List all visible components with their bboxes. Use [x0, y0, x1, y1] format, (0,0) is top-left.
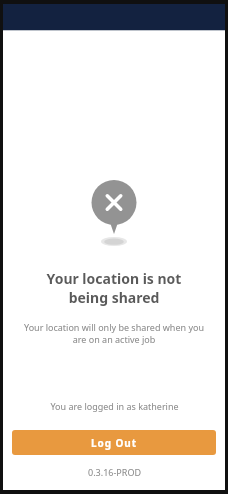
- staticText: Your location is not being shared: [29, 269, 199, 307]
- staticText: You are logged in as katherine: [50, 400, 179, 412]
- staticText: Your location will only be shared when y…: [19, 321, 209, 346]
- button[interactable]: Log Out: [12, 430, 216, 455]
- staticText: Log Out: [91, 436, 137, 450]
- staticText: 0.3.16-PROD: [88, 466, 141, 478]
